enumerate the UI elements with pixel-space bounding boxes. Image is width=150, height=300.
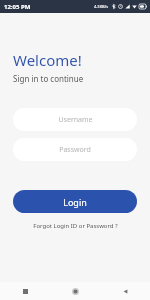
button[interactable]: Login <box>13 190 137 213</box>
staticText: Welcome! <box>13 50 82 70</box>
button[interactable]: Password <box>13 138 137 161</box>
staticText: Login <box>63 196 87 208</box>
staticText: 12:05 PM <box>4 3 31 11</box>
button[interactable]: Username <box>13 108 137 131</box>
button[interactable]: Home <box>50 282 100 300</box>
staticText: Sign in to continue <box>13 73 84 84</box>
staticText: Password <box>59 145 91 155</box>
staticText: Forgot Login ID or Password ? <box>33 222 118 230</box>
button[interactable]: Back <box>100 282 150 300</box>
staticText: Username <box>58 115 93 125</box>
button[interactable]: Recent apps <box>0 282 50 300</box>
button[interactable]: Forgot Login ID or Password ? <box>13 222 137 230</box>
staticText: 4.3KB/s <box>94 4 109 9</box>
